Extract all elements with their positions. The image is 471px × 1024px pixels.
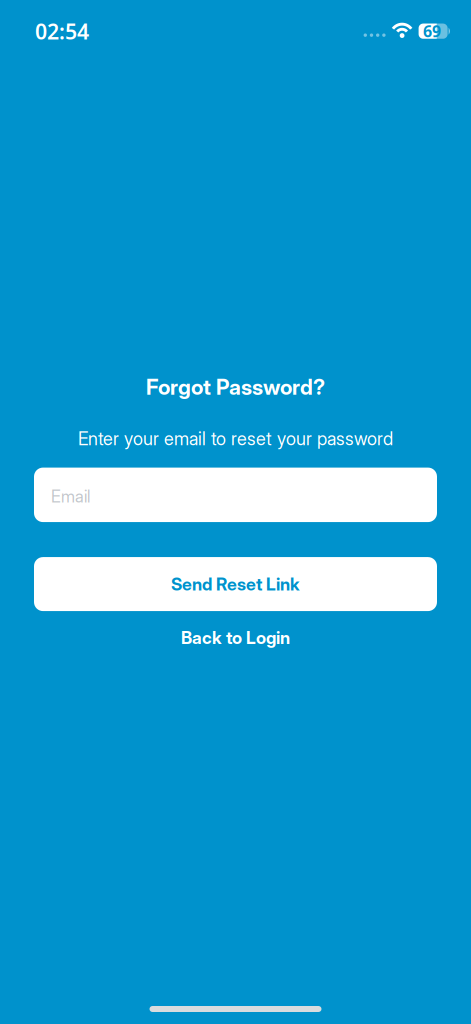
staticText: 69 <box>423 20 441 42</box>
staticText: 02:54 <box>35 17 89 45</box>
staticText: Back to Login <box>181 627 290 648</box>
button[interactable]: Back to Login <box>181 627 290 648</box>
button[interactable]: Email <box>34 468 437 522</box>
staticText: Send Reset Link <box>171 574 300 595</box>
button[interactable]: Send Reset Link <box>34 557 437 611</box>
staticText: Forgot Password? <box>146 374 325 400</box>
staticText: Enter your email to reset your password <box>78 428 393 450</box>
staticText: Email <box>51 486 90 506</box>
